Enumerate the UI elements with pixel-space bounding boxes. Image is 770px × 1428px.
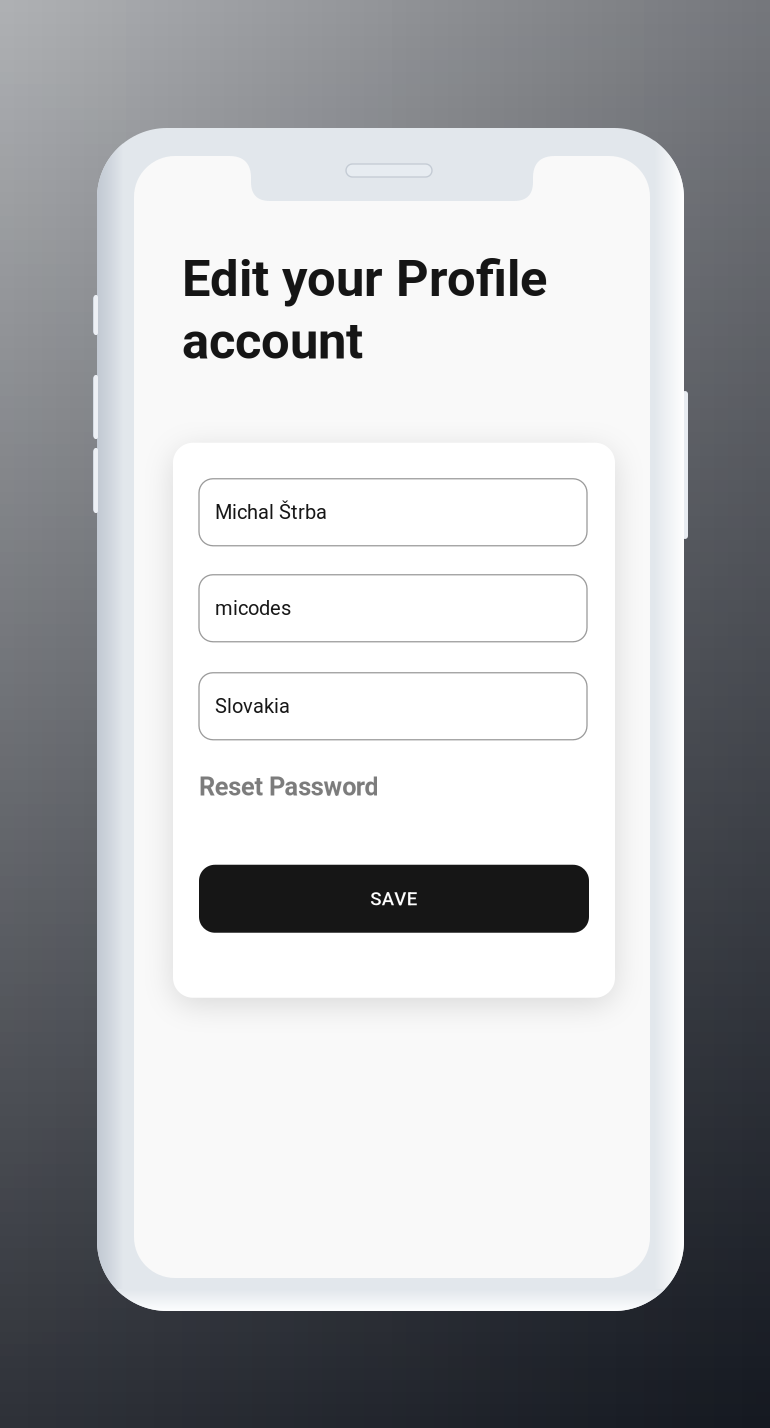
staticText: SAVE <box>370 888 418 910</box>
staticText: micodes <box>215 596 291 620</box>
staticText: Michal Štrba <box>215 500 327 524</box>
button[interactable]: Slovakia <box>199 673 587 740</box>
button[interactable]: Michal Štrba <box>199 479 587 546</box>
button[interactable]: micodes <box>199 575 587 642</box>
staticText: Slovakia <box>215 694 290 718</box>
button[interactable]: Reset Password <box>199 764 378 803</box>
button[interactable]: SAVE <box>199 865 589 933</box>
staticText: Reset Password <box>199 772 378 802</box>
staticText: Edit your Profile account <box>182 249 547 371</box>
